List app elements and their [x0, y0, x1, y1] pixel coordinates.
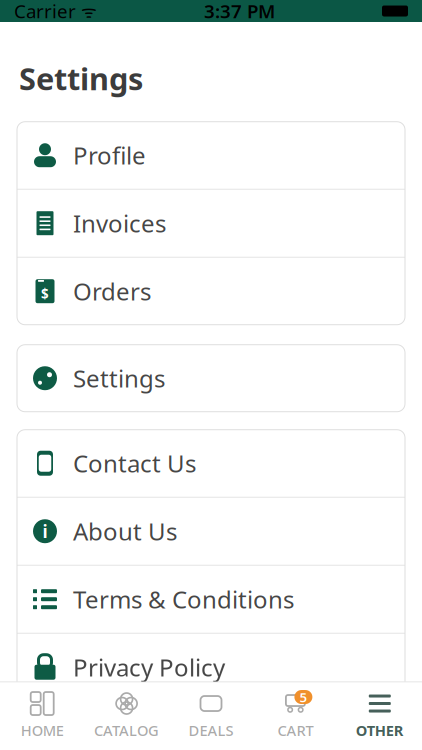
staticText: Orders — [73, 275, 151, 307]
staticText: HOME — [21, 720, 64, 740]
button[interactable]: HOME — [0, 682, 84, 750]
staticText: About Us — [73, 515, 177, 547]
button[interactable]: Profile — [17, 122, 405, 190]
button[interactable]: Settings — [17, 345, 405, 412]
button[interactable]: OTHER — [338, 682, 422, 750]
staticText: Carrier — [14, 0, 76, 23]
button[interactable]: CATALOG — [84, 682, 169, 750]
button[interactable]: Privacy Policy — [17, 634, 405, 702]
button[interactable]: Terms & Conditions — [17, 566, 405, 634]
staticText: i — [42, 520, 47, 543]
button[interactable]: Contact Us — [17, 430, 405, 498]
staticText: ᯤ — [76, 0, 97, 22]
staticText: CART — [277, 720, 313, 740]
staticText: Terms & Conditions — [73, 583, 294, 615]
staticText: Settings — [19, 58, 143, 99]
button[interactable]: Invoices — [17, 190, 405, 258]
staticText: Contact Us — [73, 447, 196, 479]
staticText: Settings — [73, 362, 165, 394]
staticText: Privacy Policy — [73, 651, 225, 683]
button[interactable]: 5 — [253, 682, 338, 750]
staticText: 5 — [299, 688, 307, 706]
staticText: Invoices — [73, 207, 166, 239]
staticText: $ — [41, 285, 49, 302]
button[interactable]: i — [17, 498, 405, 566]
button[interactable]: $ — [17, 258, 405, 325]
staticText: CATALOG — [94, 720, 159, 740]
staticText: 3:37 PM — [204, 0, 275, 23]
button[interactable]: DEALS — [169, 682, 253, 750]
staticText: DEALS — [188, 720, 233, 740]
staticText: Profile — [73, 139, 146, 171]
staticText: OTHER — [356, 720, 404, 740]
